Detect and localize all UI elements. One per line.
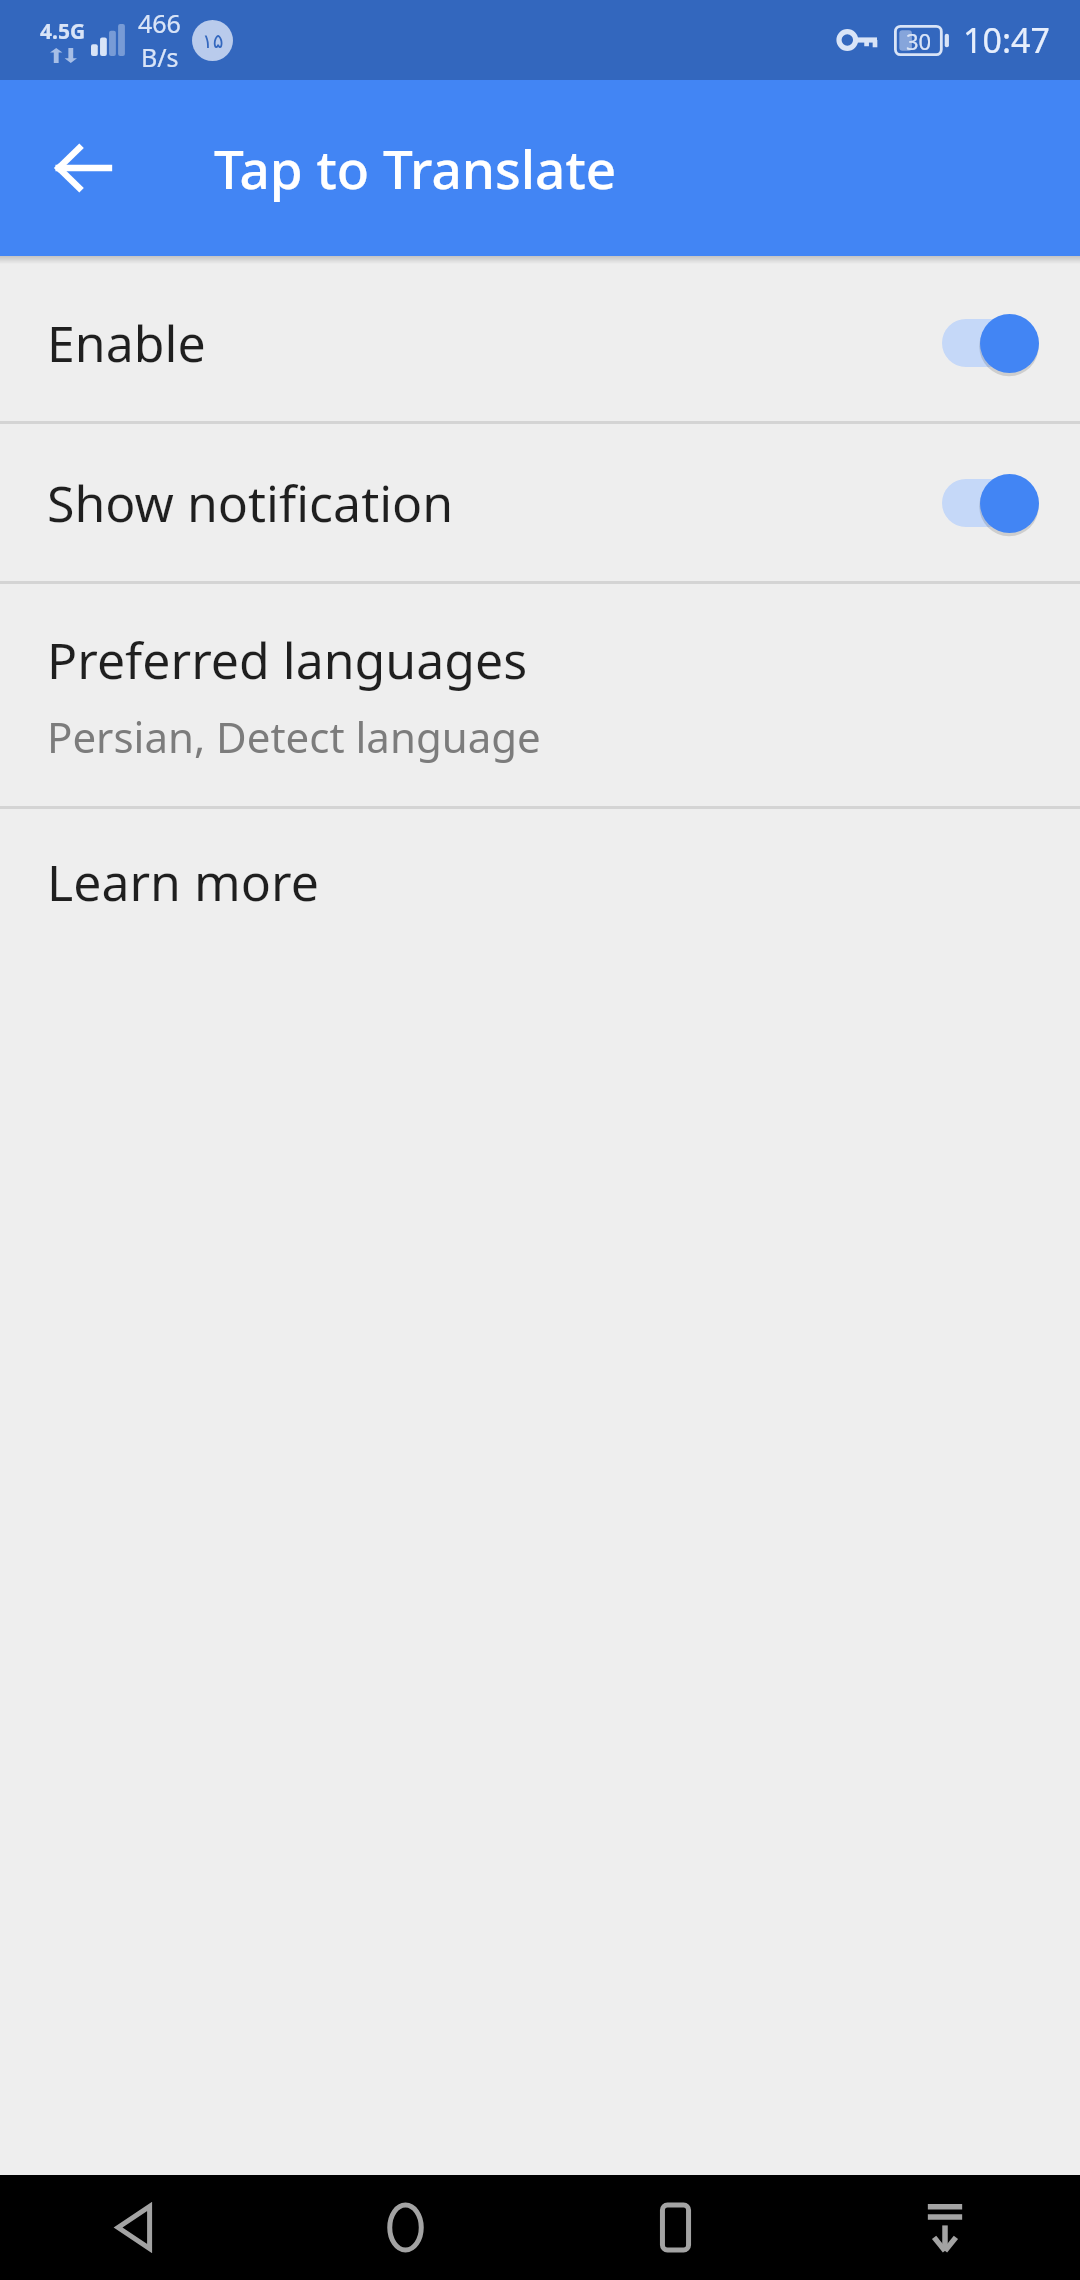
button[interactable]: Back (0, 2175, 270, 2280)
staticText: ۱۵ (202, 29, 224, 52)
other: VPN active (837, 27, 877, 53)
staticText: 466 (138, 6, 181, 40)
staticText: Show notification (47, 469, 454, 537)
button[interactable]: Recent apps (540, 2175, 810, 2280)
staticText: Preferred languages (47, 626, 528, 694)
button[interactable]: Show notifications (810, 2175, 1080, 2280)
staticText: 10:47 (963, 17, 1050, 63)
button[interactable]: Home (270, 2175, 540, 2280)
staticText: 30 (906, 26, 932, 56)
staticText: Enable (47, 309, 206, 377)
staticText: Learn more (47, 848, 319, 916)
button[interactable]: Navigate up (26, 111, 140, 225)
staticText: 4.5G (40, 17, 86, 46)
button[interactable]: Preferred languages (0, 584, 1080, 806)
staticText: B/s (141, 40, 179, 74)
button[interactable]: Show notification (0, 424, 1080, 581)
staticText: Persian, Detect language (47, 708, 541, 765)
button[interactable]: Enable (0, 264, 1080, 421)
staticText: Tap to Translate (214, 132, 617, 204)
button[interactable]: Learn more (0, 809, 1080, 954)
